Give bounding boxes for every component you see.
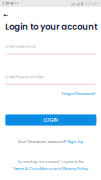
staticText: LOGIN — [43, 116, 58, 124]
button[interactable]: Forgot Password? — [60, 90, 96, 96]
button[interactable]: Sign Up — [67, 139, 83, 144]
staticText: Enter Username — [5, 44, 35, 49]
staticText: Sign Up — [67, 139, 83, 144]
staticText: 4:23 pm — [85, 1, 99, 6]
staticText: Forgot Password? — [61, 91, 96, 96]
button[interactable]: LOGIN — [5, 114, 96, 126]
button[interactable]: Back — [0, 11, 11, 20]
staticText: By creating an account, I agree to the — [17, 159, 83, 164]
button[interactable]: Terms & Conditions and Privacy Policy — [13, 166, 88, 171]
staticText: Don't have an account? — [17, 139, 67, 144]
staticText: Enter Password Here — [5, 74, 43, 80]
staticText: Login to your account — [5, 21, 97, 33]
staticText: Terms & Conditions and Privacy Policy — [13, 166, 88, 171]
